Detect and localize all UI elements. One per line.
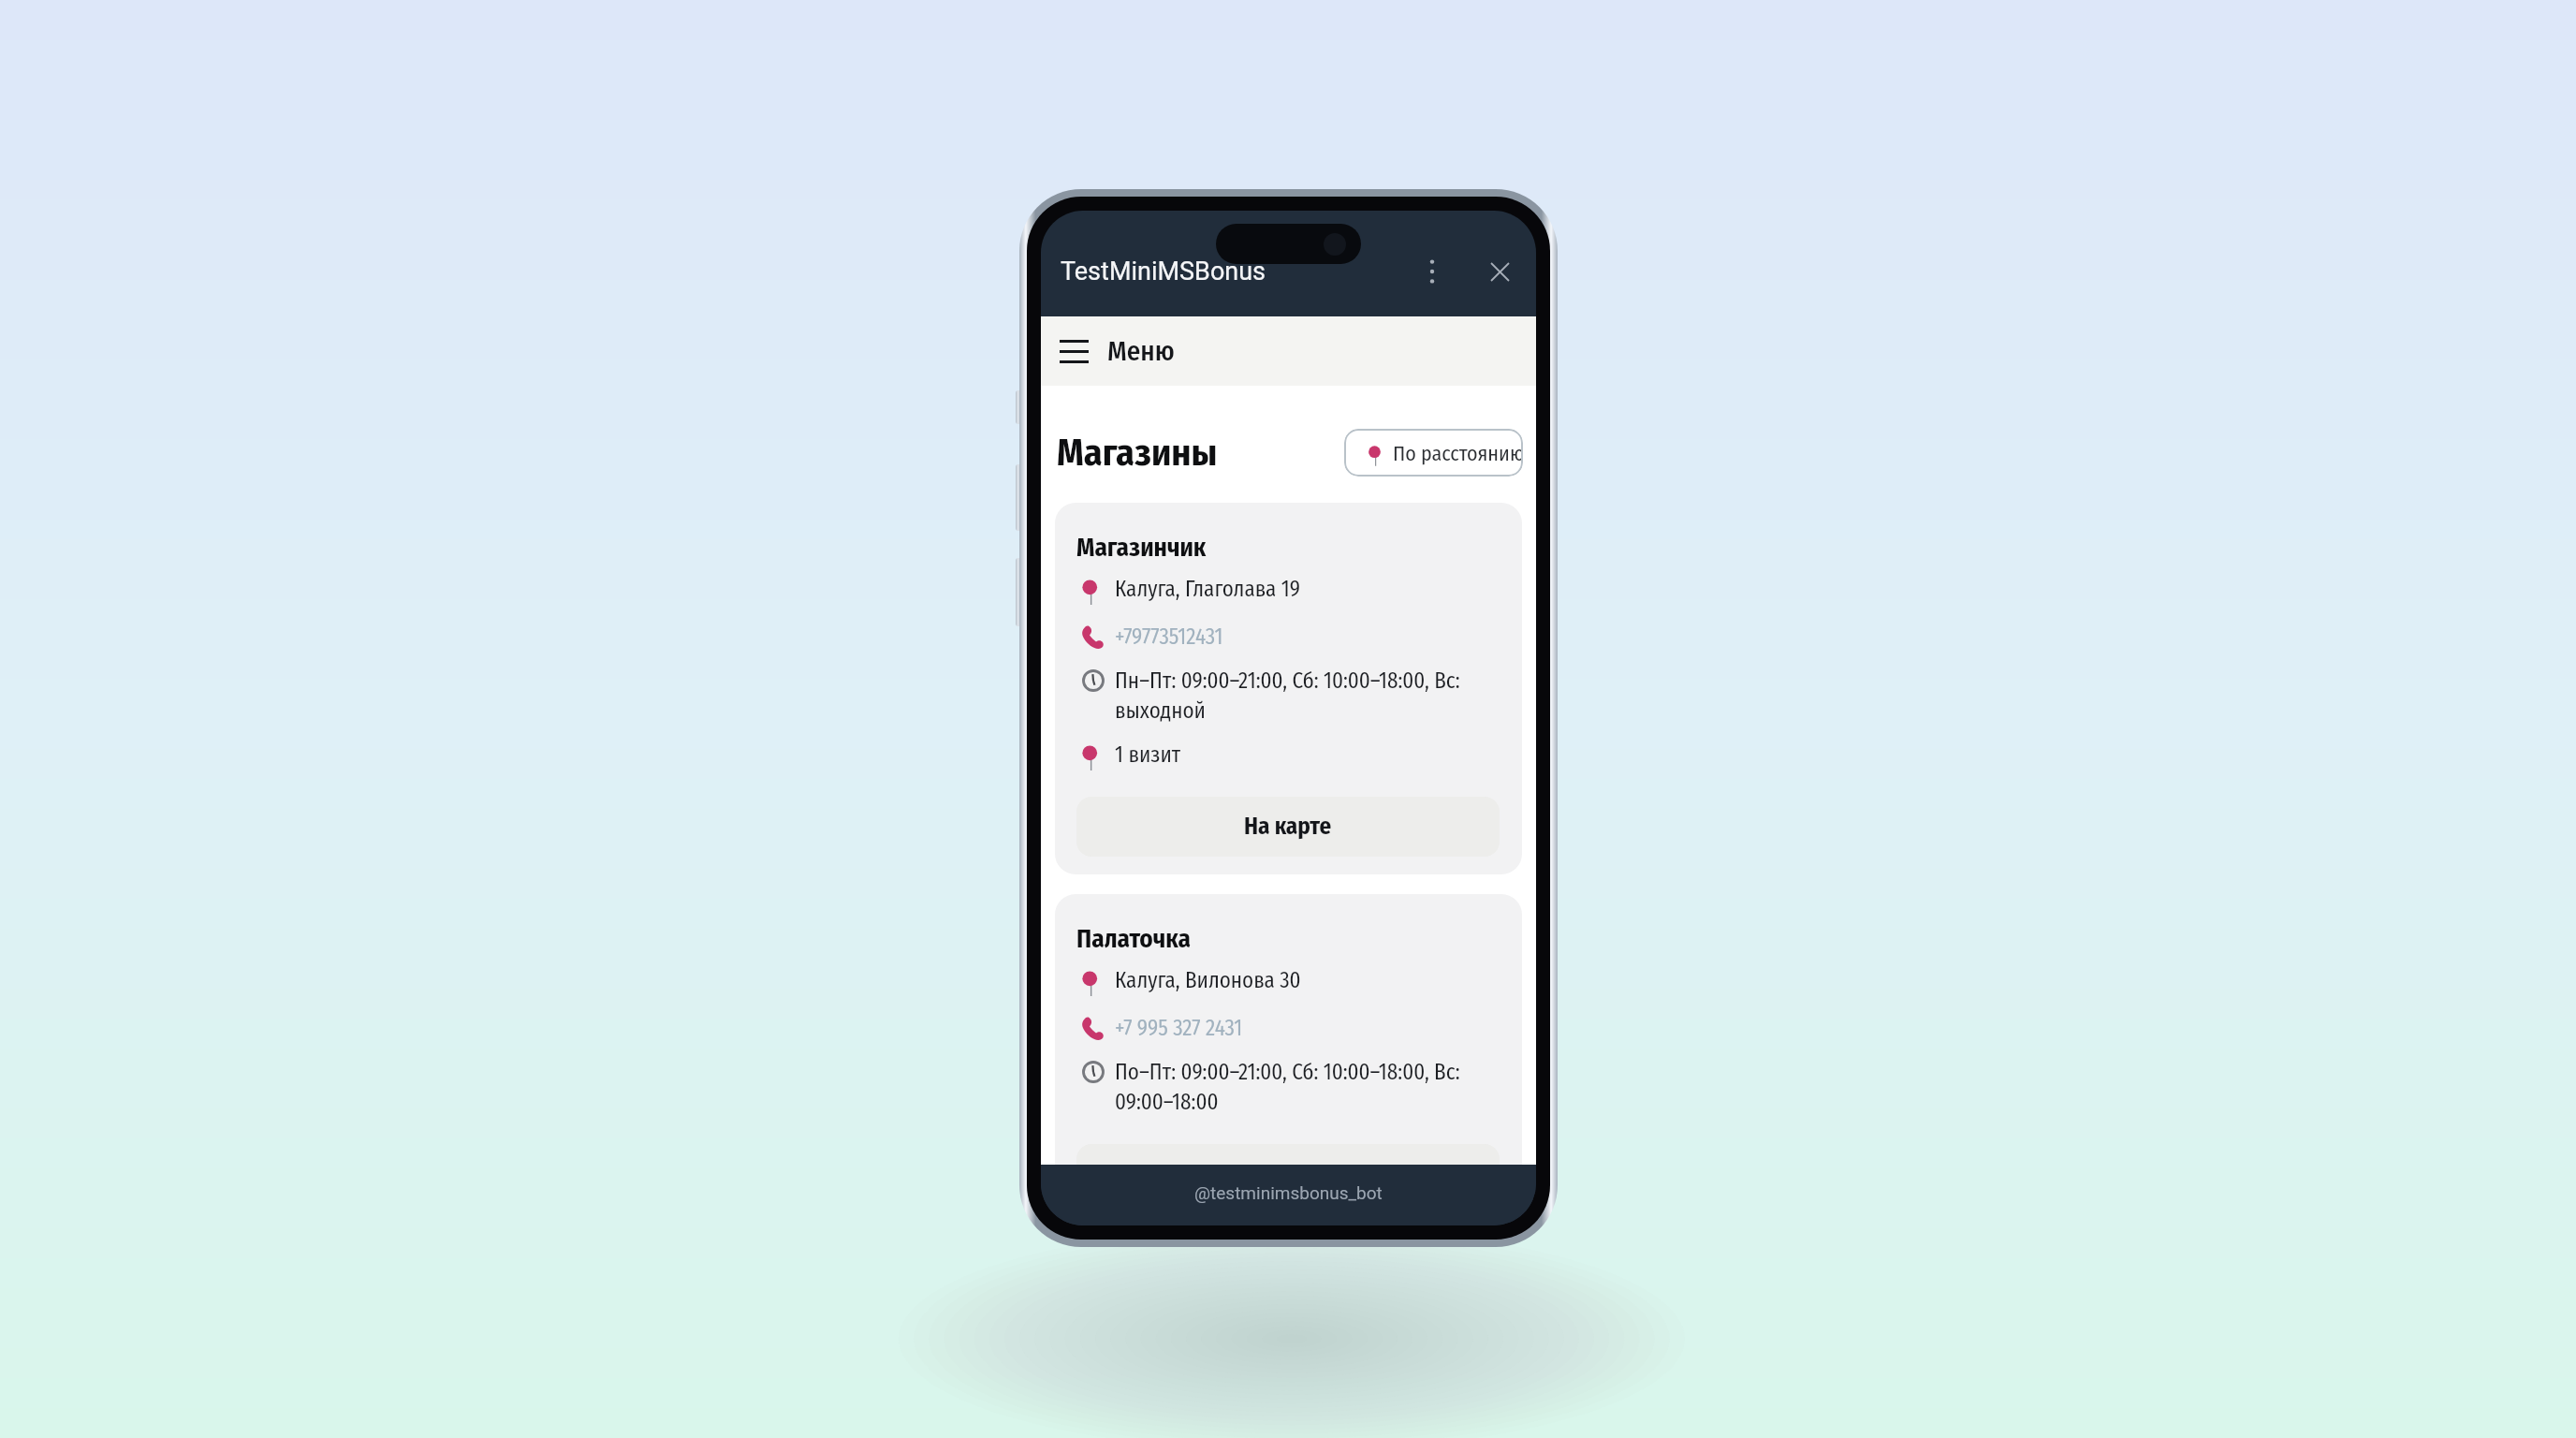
button[interactable]: Меню [1041,316,1536,386]
staticText: Магазинчик [1076,533,1207,563]
button[interactable]: Close [1479,251,1520,292]
staticText: Меню [1107,335,1175,368]
staticText: Магазины [1057,431,1218,476]
button[interactable]: More options [1413,253,1451,290]
staticText: 1 визит [1115,741,1181,768]
staticText: По–Пт: 09:00–21:00, Сб: 10:00–18:00, Вс:… [1115,1059,1500,1115]
button[interactable]: Магазинчик [1055,503,1522,874]
button[interactable]: По расстоянию [1344,429,1523,477]
staticText: На карте [1244,813,1332,841]
staticText: +7 995 327 2431 [1115,1015,1243,1041]
staticText: +79773512431 [1115,624,1223,650]
staticText: TestMiniMSBonus [1061,257,1266,286]
staticText: По расстоянию [1393,441,1523,465]
staticText: Калуга, Вилонова 30 [1115,967,1301,993]
staticText: @testminimsbonus_bot [1194,1182,1383,1203]
staticText: Палаточка [1076,924,1191,954]
staticText: Пн–Пт: 09:00–21:00, Сб: 10:00–18:00, Вс:… [1115,668,1500,724]
button[interactable]: На карте [1076,797,1500,857]
staticText: Калуга, Глаголава 19 [1115,576,1300,602]
button[interactable]: Палаточка [1055,894,1522,1165]
